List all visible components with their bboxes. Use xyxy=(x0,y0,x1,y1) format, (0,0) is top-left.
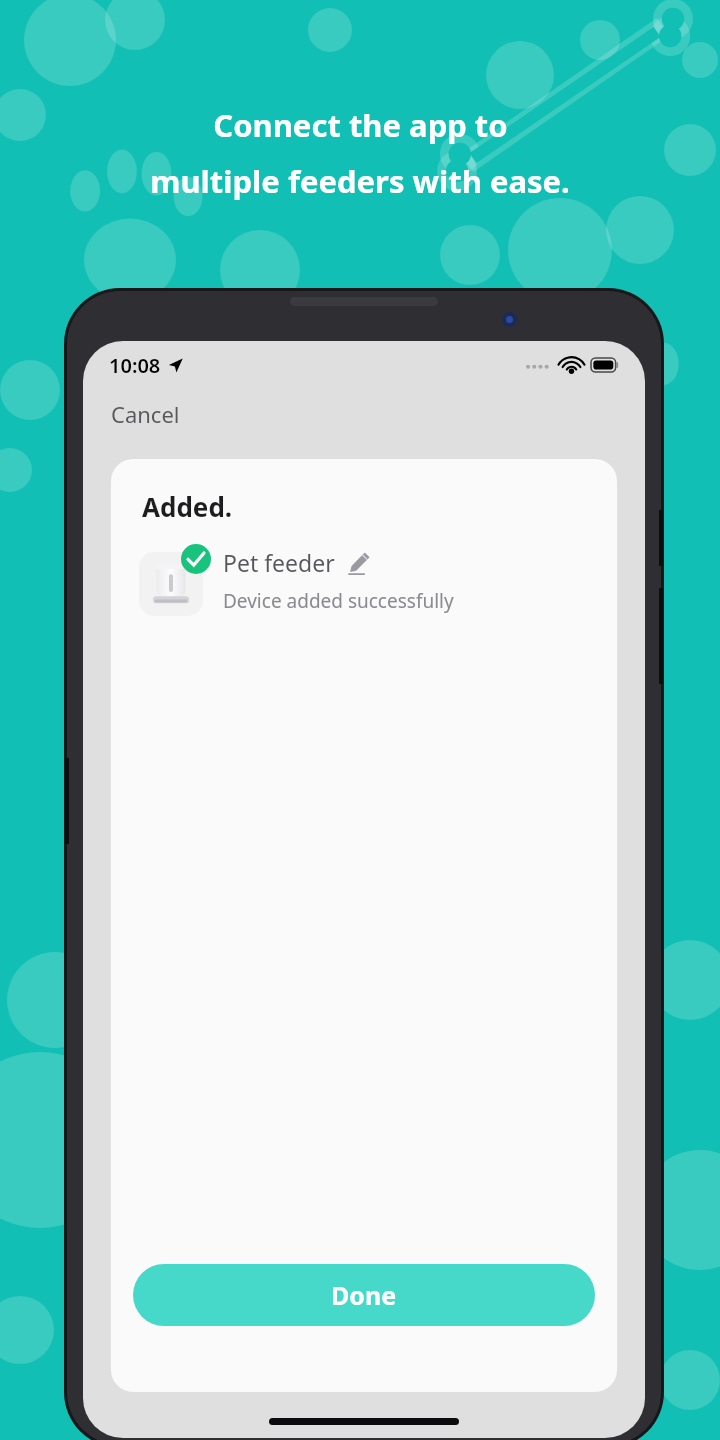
staticText: multiple feeders with ease. xyxy=(150,160,570,202)
staticText: Added. xyxy=(142,489,233,524)
button[interactable]: Cancel xyxy=(109,395,182,433)
staticText: Connect the app to xyxy=(213,104,508,146)
button[interactable]: Pet feeder xyxy=(111,542,617,618)
staticText: 10:08 xyxy=(109,352,161,379)
button[interactable]: Done xyxy=(133,1264,595,1326)
staticText: Done xyxy=(331,1278,397,1312)
staticText: Pet feeder xyxy=(223,547,335,578)
staticText: Device added successfully xyxy=(223,588,454,614)
button[interactable]: Rename device xyxy=(347,551,371,575)
staticText: Cancel xyxy=(111,399,180,429)
